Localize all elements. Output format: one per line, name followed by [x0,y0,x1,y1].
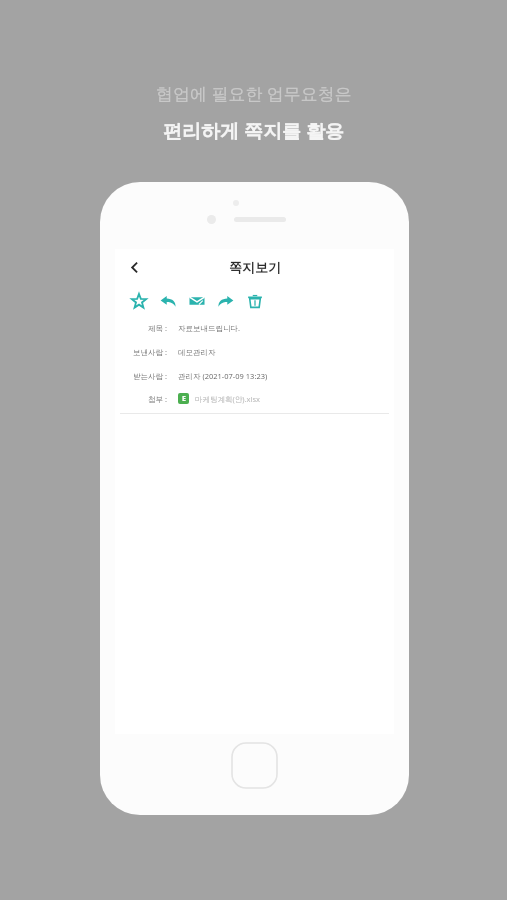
button[interactable]: Reply [155,288,180,313]
staticText: 데모관리자 [178,348,216,357]
button[interactable]: Forward [213,288,238,313]
button[interactable]: Back [120,253,148,281]
staticText: 관리자 (2021-07-09 13:23) [178,371,268,381]
button[interactable]: Home [232,743,277,788]
staticText: 첨부 : [121,394,167,404]
button[interactable]: Favorite [126,288,151,313]
button[interactable]: Mail [184,288,209,313]
staticText: 쪽지보기 [229,259,281,275]
button[interactable]: 첨부 : [121,393,394,404]
staticText: 편리하게 쪽지를 활용 [163,118,344,144]
staticText: 제목 : [121,323,167,333]
staticText: E [182,394,186,404]
button[interactable]: Delete [242,288,267,313]
staticText: 자료보내드립니다. [178,323,241,333]
staticText: 보낸사람 : [121,347,167,357]
staticText: 받는사람 : [121,371,167,381]
staticText: 마케팅계획(안).xlsx [195,394,260,404]
staticText: 협업에 필요한 업무요청은 [156,82,352,105]
